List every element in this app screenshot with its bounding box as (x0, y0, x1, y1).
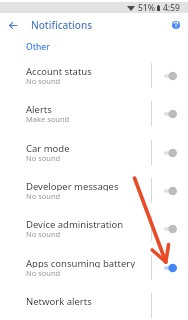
staticText: No sound (26, 229, 61, 238)
button[interactable]: Account status (0, 56, 188, 94)
button[interactable]: Toggle (164, 183, 177, 197)
staticText: No sound (26, 191, 61, 200)
button[interactable]: Car mode (0, 133, 188, 171)
staticText: Device administration (26, 218, 124, 229)
button[interactable]: Help (165, 14, 187, 36)
button[interactable]: Toggle (164, 145, 177, 159)
button[interactable]: Toggle (164, 106, 177, 120)
staticText: Account status (26, 65, 92, 76)
staticText: Car mode (26, 142, 70, 153)
staticText: Alerts (26, 103, 52, 114)
staticText: Notifications (31, 18, 93, 32)
button[interactable]: Toggle (164, 68, 177, 82)
staticText: 4:59 (163, 2, 180, 13)
staticText: 51% (138, 2, 155, 13)
staticText: No sound (26, 153, 61, 162)
staticText: Other (26, 41, 50, 53)
staticText: Network alerts (26, 295, 92, 306)
button[interactable]: Device administration (0, 209, 188, 247)
button[interactable]: Toggle (164, 260, 177, 274)
button[interactable]: Back (2, 14, 24, 36)
staticText: No sound (26, 76, 61, 85)
staticText: Developer messages (26, 180, 119, 191)
button[interactable]: Developer messages (0, 171, 188, 209)
button[interactable]: Toggle (164, 221, 177, 235)
button[interactable]: Alerts (0, 94, 188, 132)
button[interactable]: Network alerts (0, 286, 188, 320)
staticText: No sound (26, 268, 61, 277)
staticText: Make sound (26, 114, 70, 123)
staticText: Apps consuming battery (26, 257, 136, 268)
button[interactable]: Apps consuming battery (0, 248, 188, 286)
